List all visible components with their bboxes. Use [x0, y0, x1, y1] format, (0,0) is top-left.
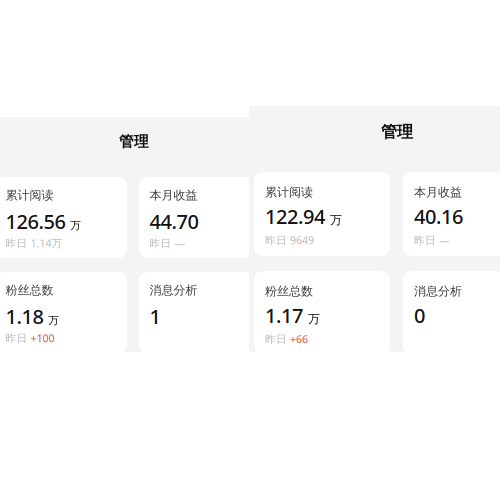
staticText: 万: [70, 219, 81, 232]
staticText: 粉丝总数: [265, 284, 313, 299]
button[interactable]: 粉丝总数: [0, 272, 127, 353]
staticText: 1.18: [5, 303, 43, 330]
staticText: 万: [48, 314, 59, 327]
staticText: 本月收益: [414, 185, 462, 200]
staticText: 126.56: [5, 208, 65, 235]
button[interactable]: 累计阅读: [0, 177, 127, 258]
staticText: 1: [149, 303, 160, 330]
staticText: 昨日 9649: [265, 233, 314, 247]
staticText: 44.70: [149, 208, 198, 235]
staticText: 40.16: [414, 203, 463, 230]
staticText: 昨日: [265, 332, 287, 346]
button[interactable]: 管理: [249, 123, 500, 141]
staticText: +100: [30, 331, 54, 345]
staticText: 消息分析: [414, 284, 462, 299]
staticText: 万: [308, 312, 320, 326]
staticText: 粉丝总数: [5, 283, 53, 298]
button[interactable]: 本月收益: [403, 172, 500, 256]
button[interactable]: 累计阅读: [254, 172, 390, 256]
staticText: 管理: [381, 122, 413, 142]
button[interactable]: 管理: [0, 133, 279, 150]
button[interactable]: 消息分析: [403, 271, 500, 355]
button[interactable]: 消息分析: [139, 272, 271, 353]
staticText: 昨日: [5, 331, 27, 345]
staticText: 昨日 —: [149, 236, 185, 250]
staticText: 1.17: [265, 302, 303, 329]
staticText: 0: [414, 302, 425, 329]
staticText: 本月收益: [149, 188, 197, 203]
button[interactable]: 本月收益: [139, 177, 271, 258]
staticText: 累计阅读: [265, 185, 313, 200]
button[interactable]: 粉丝总数: [254, 271, 390, 355]
staticText: 122.94: [265, 203, 325, 230]
staticText: +66: [290, 332, 308, 346]
staticText: 累计阅读: [5, 188, 53, 203]
staticText: 万: [330, 213, 342, 227]
staticText: 管理: [119, 133, 149, 151]
staticText: 昨日 —: [414, 233, 450, 247]
staticText: 消息分析: [149, 283, 197, 298]
staticText: 昨日 1.14万: [5, 236, 62, 250]
